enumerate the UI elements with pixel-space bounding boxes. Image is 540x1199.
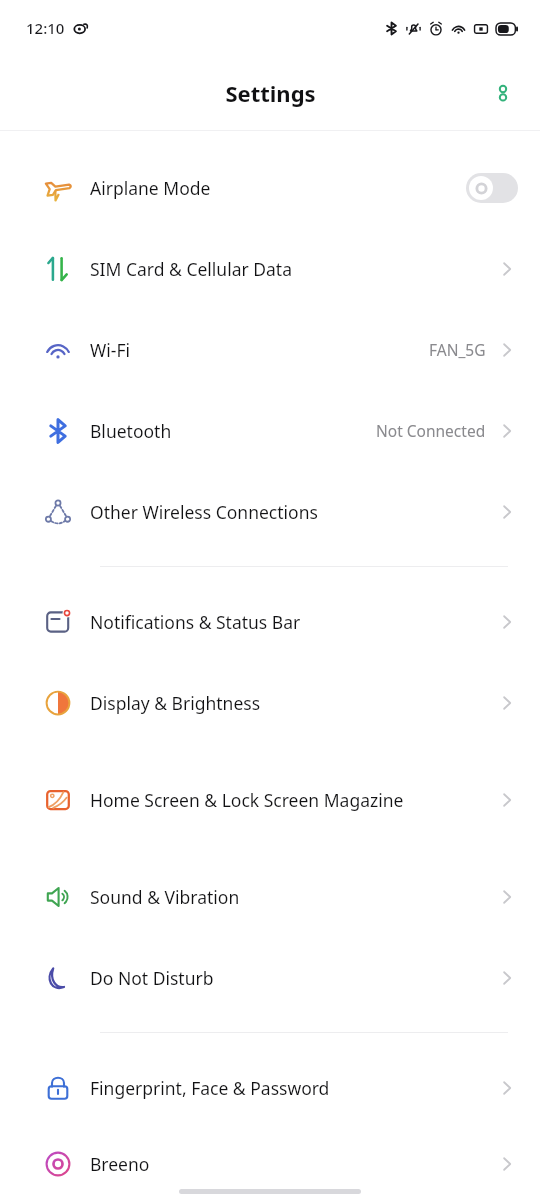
staticText: Other Wireless Connections <box>90 500 318 524</box>
staticText: Wi-Fi <box>90 338 131 362</box>
staticText: Breeno <box>90 1152 150 1176</box>
button[interactable]: Breeno <box>0 1128 540 1199</box>
staticText: Home Screen & Lock Screen Magazine <box>90 788 404 812</box>
staticText: Settings <box>225 78 316 108</box>
staticText: Fingerprint, Face & Password <box>90 1076 330 1100</box>
button[interactable]: Do Not Disturb <box>0 937 540 1018</box>
button[interactable]: Airplane Mode <box>0 147 540 228</box>
button[interactable]: Bluetooth <box>0 390 540 471</box>
staticText: Notifications & Status Bar <box>90 610 301 634</box>
staticText: Bluetooth <box>90 419 172 443</box>
staticText: Not Connected <box>376 420 486 441</box>
button[interactable]: Display & Brightness <box>0 662 540 743</box>
button[interactable]: Airplane Mode toggle <box>466 173 518 203</box>
staticText: FAN_5G <box>429 339 486 360</box>
staticText: Airplane Mode <box>90 176 211 200</box>
button[interactable]: Other Wireless Connections <box>0 471 540 552</box>
button[interactable]: Fingerprint, Face & Password <box>0 1047 540 1128</box>
button[interactable]: Sound & Vibration <box>0 856 540 937</box>
button[interactable]: Home Screen & Lock Screen Magazine <box>0 743 540 856</box>
button[interactable]: Wi-Fi <box>0 309 540 390</box>
staticText: Do Not Disturb <box>90 966 214 990</box>
staticText: SIM Card & Cellular Data <box>90 257 293 281</box>
button[interactable]: SIM Card & Cellular Data <box>0 228 540 309</box>
button[interactable]: More options <box>486 76 520 110</box>
button[interactable]: Notifications & Status Bar <box>0 581 540 662</box>
staticText: Display & Brightness <box>90 691 261 715</box>
staticText: Sound & Vibration <box>90 885 240 909</box>
staticText: 12:10 <box>26 18 65 38</box>
